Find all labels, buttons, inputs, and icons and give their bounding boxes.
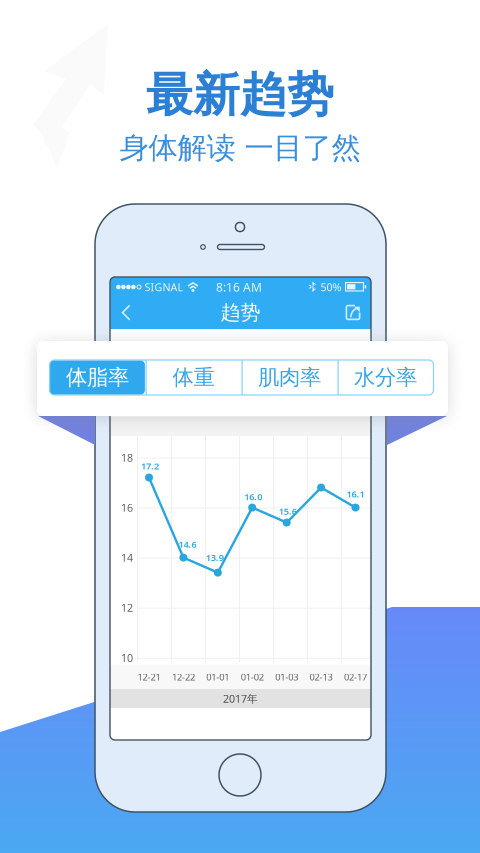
staticText: 15.6 bbox=[279, 505, 297, 517]
staticText: 8:16 AM bbox=[216, 279, 262, 295]
button[interactable]: Share bbox=[337, 296, 369, 329]
staticText: 14 bbox=[121, 550, 133, 565]
button[interactable]: 体重 bbox=[145, 360, 241, 395]
staticText: 体脂率 bbox=[66, 364, 129, 391]
staticText: 18 bbox=[121, 450, 133, 465]
staticText: 01-02 bbox=[241, 671, 264, 683]
button[interactable]: 肌肉率 bbox=[241, 360, 337, 395]
staticText: 02-17 bbox=[344, 671, 367, 683]
staticText: 最新趋势 bbox=[146, 66, 334, 124]
button[interactable]: Back bbox=[109, 296, 143, 329]
button[interactable]: 水分率 bbox=[337, 360, 433, 395]
button[interactable]: 体脂率 bbox=[49, 360, 145, 395]
staticText: 12-22 bbox=[172, 671, 195, 683]
staticText: 13.9 bbox=[206, 551, 224, 563]
staticText: 10 bbox=[121, 651, 133, 665]
staticText: 17.2 bbox=[141, 460, 159, 472]
staticText: 2017年 bbox=[223, 691, 258, 706]
staticText: 01-01 bbox=[206, 671, 229, 683]
staticText: 12 bbox=[121, 601, 133, 615]
staticText: SIGNAL bbox=[144, 280, 183, 294]
staticText: 趋势 bbox=[220, 300, 260, 325]
staticText: 身体解读 一目了然 bbox=[119, 130, 360, 166]
staticText: 肌肉率 bbox=[258, 364, 321, 391]
staticText: 16.0 bbox=[244, 490, 262, 503]
staticText: 水分率 bbox=[354, 364, 417, 391]
staticText: 02-13 bbox=[310, 671, 333, 683]
staticText: 01-03 bbox=[275, 671, 298, 683]
staticText: 12-21 bbox=[137, 671, 160, 683]
staticText: 体重 bbox=[172, 364, 214, 391]
staticText: 50% bbox=[320, 280, 341, 294]
staticText: 16 bbox=[121, 500, 133, 515]
staticText: 14.6 bbox=[178, 538, 196, 550]
staticText: 16.1 bbox=[346, 488, 364, 500]
